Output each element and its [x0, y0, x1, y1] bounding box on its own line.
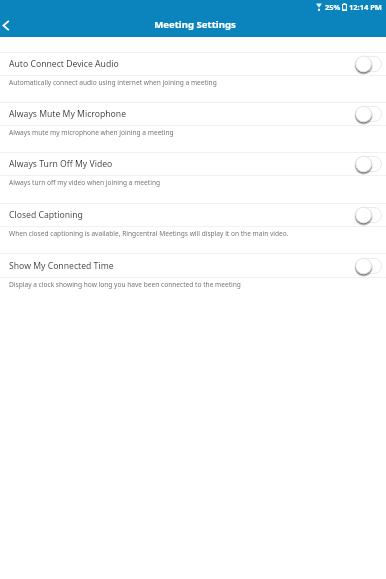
staticText: Auto Connect Device Audio — [9, 58, 353, 70]
staticText: Closed Captioning — [9, 209, 353, 221]
staticText: 12:14 PM — [349, 2, 382, 12]
staticText: Show My Connected Time — [9, 260, 353, 272]
staticText: Always mute my microphone when joining a… — [9, 128, 174, 137]
button[interactable]: Toggle setting — [353, 205, 383, 225]
staticText: Always turn off my video when joining a … — [9, 178, 161, 187]
staticText: Always Turn Off My Video — [9, 158, 353, 170]
button[interactable]: Toggle setting — [353, 54, 383, 74]
button[interactable]: Back — [0, 14, 17, 36]
button[interactable]: Toggle setting — [353, 256, 383, 276]
staticText: Display a clock showing how long you hav… — [9, 280, 241, 289]
staticText: Meeting Settings — [154, 18, 236, 31]
staticText: 25% — [325, 2, 341, 12]
button[interactable]: Show My Connected Time — [0, 254, 386, 277]
button[interactable]: Auto Connect Device Audio — [0, 53, 386, 75]
button[interactable]: Always Turn Off My Video — [0, 153, 386, 175]
button[interactable]: Closed Captioning — [0, 204, 386, 226]
staticText: When closed captioning is available, Rin… — [9, 229, 289, 238]
button[interactable]: Toggle setting — [353, 154, 383, 174]
staticText: Automatically connect audio using intern… — [9, 78, 217, 87]
button[interactable]: Always Mute My Microphone — [0, 103, 386, 125]
button[interactable]: Toggle setting — [353, 104, 383, 124]
staticText: Always Mute My Microphone — [9, 108, 353, 120]
